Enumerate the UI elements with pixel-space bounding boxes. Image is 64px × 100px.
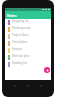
staticText: Travel plans — [12, 40, 28, 44]
button[interactable]: Reading list — [5, 61, 51, 68]
button[interactable]: Travel plans — [5, 40, 51, 47]
staticText: Reading list — [12, 61, 28, 65]
button[interactable]: Workout plan — [5, 54, 51, 61]
button[interactable]: Project ideas — [5, 33, 51, 40]
button[interactable]: Meeting notes — [5, 26, 51, 33]
button[interactable]: Add note — [44, 67, 50, 73]
staticText: Notes — [7, 13, 17, 18]
staticText: Meeting notes — [12, 26, 31, 30]
button[interactable]: Recipes — [5, 47, 51, 54]
staticText: Recipes — [12, 47, 22, 51]
button[interactable]: Notes — [5, 11, 51, 19]
staticText: Project ideas — [12, 33, 29, 37]
button[interactable]: Shopping list — [5, 19, 51, 26]
staticText: Shopping list — [12, 19, 29, 23]
staticText: Workout plan — [12, 54, 30, 58]
